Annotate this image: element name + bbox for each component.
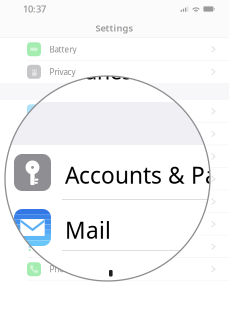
staticText: Battery xyxy=(49,44,76,55)
button[interactable]: Accounts & Passwords xyxy=(0,123,229,145)
button[interactable]: Reminders xyxy=(0,235,229,258)
staticText: Phone xyxy=(49,264,74,274)
staticText: iTunes & App Store xyxy=(67,57,229,85)
button[interactable]: Mail xyxy=(0,145,229,168)
staticText: Settings xyxy=(95,22,133,34)
button[interactable]: Privacy xyxy=(0,60,229,83)
staticText: Contacts xyxy=(49,174,82,184)
button[interactable]: iTunes & App Store xyxy=(0,100,229,123)
staticText: Privacy xyxy=(49,66,75,77)
staticText: Mail xyxy=(49,151,64,162)
button[interactable]: Calendar xyxy=(0,190,229,213)
button[interactable]: Phone xyxy=(0,258,229,281)
staticText: Mail xyxy=(65,215,111,245)
staticText: Reminders xyxy=(49,241,90,252)
staticText: 10:37 xyxy=(23,3,46,15)
button[interactable]: Battery xyxy=(0,38,229,61)
button[interactable]: Notes xyxy=(0,213,229,235)
button[interactable]: Contacts xyxy=(0,168,229,190)
staticText: Calendar xyxy=(49,196,82,207)
staticText: Accounts & Passwords xyxy=(65,160,229,190)
staticText: Notes xyxy=(49,219,72,229)
